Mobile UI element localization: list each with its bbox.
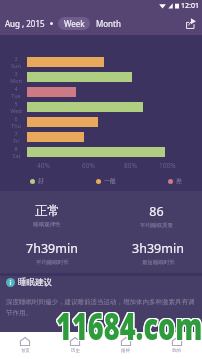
staticText: 11684.com <box>57 300 202 349</box>
staticText: 深度睡眠时间偏少，建议睡前适当运动，增加体内多种激素具有调节作用。 <box>6 298 196 317</box>
button[interactable]: 7h39min <box>7 240 97 266</box>
button[interactable]: 差 <box>168 177 182 185</box>
staticText: 2 <box>14 55 18 62</box>
staticText: 100% <box>159 161 176 170</box>
staticText: 3 <box>14 70 18 77</box>
staticText: 40% <box>37 161 50 170</box>
staticText: Sat <box>12 152 21 159</box>
staticText: 11684.com <box>55 300 202 349</box>
staticText: 7 <box>14 130 18 137</box>
staticText: 12:01 <box>181 1 199 11</box>
button[interactable]: Month <box>92 17 125 30</box>
staticText: 5 <box>14 100 18 107</box>
staticText: 11684.com <box>56 301 202 350</box>
staticText: 平均睡眠质量 <box>140 222 173 229</box>
button[interactable]: 闹钟 <box>100 332 151 359</box>
staticText: 80% <box>124 161 137 170</box>
staticText: Aug , 2015 <box>5 18 45 29</box>
staticText: 11684.com <box>57 302 202 352</box>
staticText: Month <box>96 18 121 29</box>
staticText: Wed <box>10 107 22 114</box>
staticText: Thu <box>11 122 21 129</box>
staticText: 睡眠建议 <box>18 277 52 288</box>
button[interactable]: 首页 <box>0 332 50 359</box>
button[interactable]: 历史 <box>50 332 100 359</box>
staticText: 11684.com <box>55 302 202 352</box>
button[interactable]: Week <box>58 17 90 30</box>
staticText: 7h39min <box>26 240 78 257</box>
staticText: 我的 <box>172 348 181 354</box>
button[interactable]: 睡眠建议 <box>6 277 52 288</box>
button[interactable]: 好 <box>30 177 44 185</box>
staticText: 8 <box>14 145 18 152</box>
staticText: 3h39min <box>132 240 184 257</box>
staticText: Fri <box>13 137 20 144</box>
staticText: Mon <box>10 77 22 84</box>
button[interactable]: 正常 <box>2 203 92 228</box>
button[interactable]: 一般 <box>96 177 116 185</box>
staticText: 差 <box>176 177 182 185</box>
staticText: 最短睡眠时长 <box>142 259 175 266</box>
staticText: 闹钟 <box>121 348 130 354</box>
staticText: 首页 <box>21 348 30 354</box>
button[interactable]: Share <box>179 12 201 34</box>
staticText: Tue <box>11 92 21 99</box>
staticText: 4 <box>14 85 18 92</box>
staticText: 11684.com <box>57 301 202 350</box>
staticText: 睡眠规律性 <box>33 221 61 228</box>
staticText: 11684.com <box>56 302 202 352</box>
button[interactable]: 3h39min <box>113 240 202 266</box>
staticText: 6 <box>14 115 18 122</box>
staticText: 11684.com <box>55 301 202 350</box>
button[interactable]: 我的 <box>151 332 202 359</box>
staticText: 60% <box>82 161 95 170</box>
staticText: 86 <box>149 203 164 220</box>
staticText: Week <box>64 18 85 29</box>
staticText: 好 <box>38 177 44 185</box>
staticText: 11684.com <box>56 300 202 349</box>
staticText: 历史 <box>71 348 80 354</box>
button[interactable]: 86 <box>111 203 201 229</box>
staticText: 一般 <box>104 177 116 185</box>
staticText: 正常 <box>35 203 60 219</box>
staticText: Sun <box>11 62 21 69</box>
staticText: 平均睡眠时长 <box>36 259 69 266</box>
